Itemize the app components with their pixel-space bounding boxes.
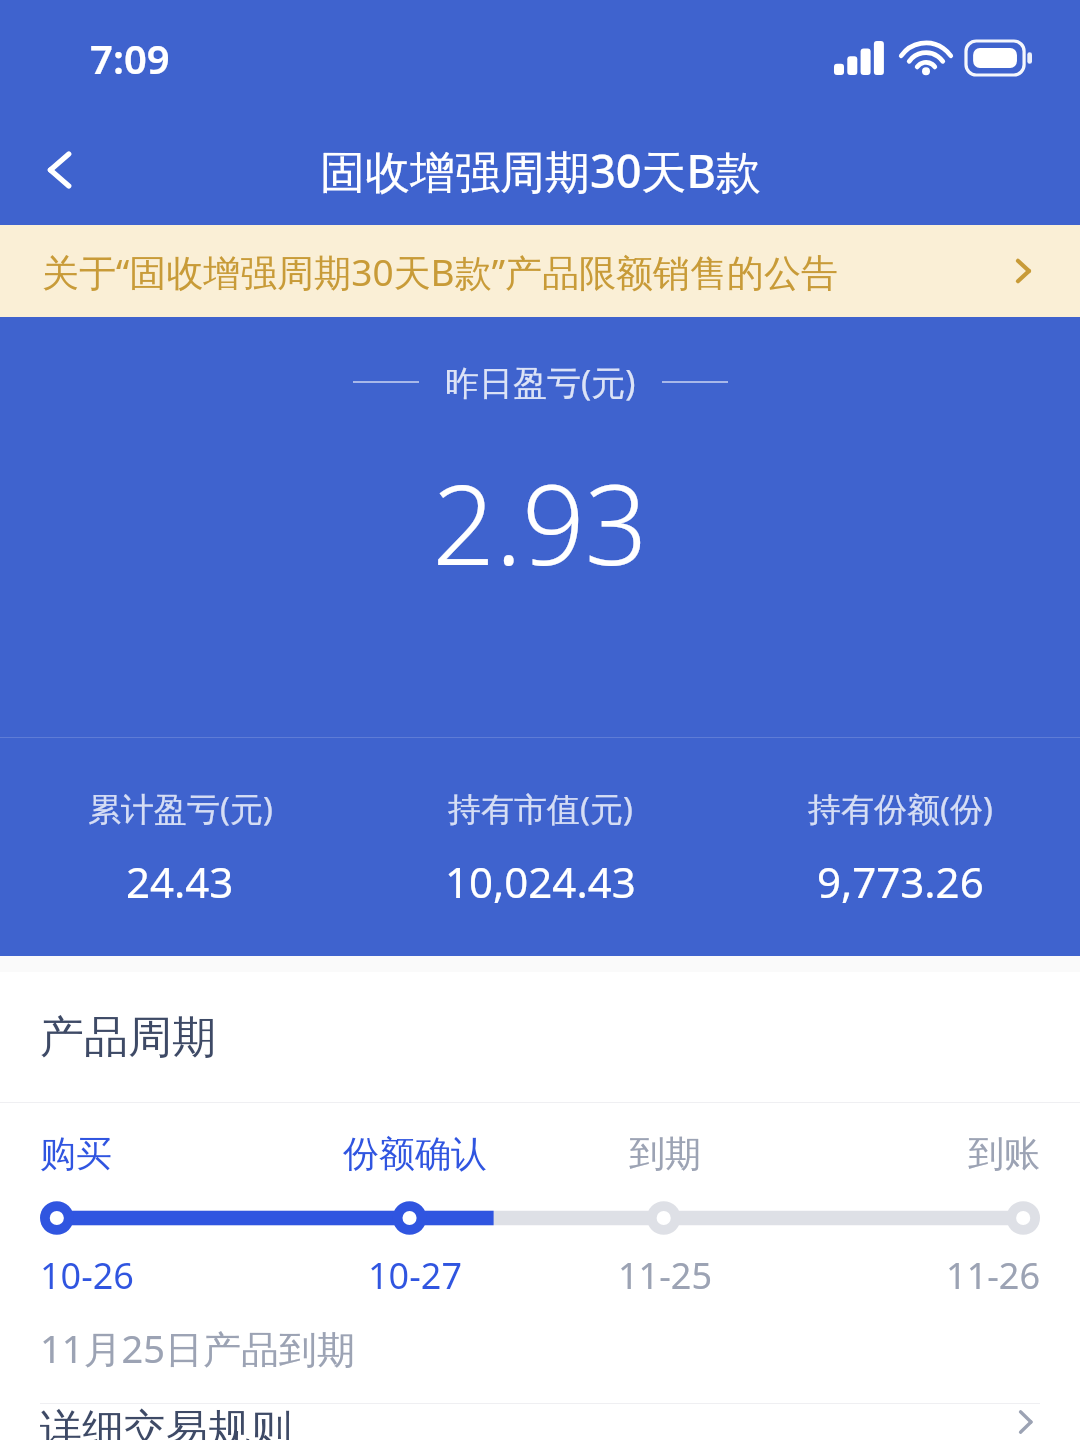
staticText: 24.43 xyxy=(126,853,234,910)
staticText: 持有份额(份) xyxy=(808,786,993,831)
staticText: 昨日盈亏(元) xyxy=(445,359,636,405)
staticText: 到账 xyxy=(790,1131,1040,1176)
staticText: 累计盈亏(元) xyxy=(88,786,273,831)
staticText: 产品周期 xyxy=(40,1010,216,1065)
button[interactable]: 详细交易规则 xyxy=(0,1404,1080,1440)
staticText: 11月25日产品到期 xyxy=(40,1322,355,1374)
staticText: 份额确认 xyxy=(290,1131,540,1176)
staticText: 到期 xyxy=(540,1131,790,1176)
staticText: 固收增强周期30天B款 xyxy=(320,140,761,201)
staticText: 10-26 xyxy=(40,1251,290,1293)
staticText: 持有市值(元) xyxy=(448,786,633,831)
staticText: 9,773.26 xyxy=(817,853,984,910)
button[interactable]: 关于“固收增强周期30天B款”产品限额销售的公告 xyxy=(0,225,1080,317)
staticText: 10-27 xyxy=(290,1251,540,1293)
staticText: 购买 xyxy=(40,1131,290,1176)
staticText: 关于“固收增强周期30天B款”产品限额销售的公告 xyxy=(42,246,1008,297)
staticText: 11-26 xyxy=(790,1251,1040,1293)
button[interactable]: Back xyxy=(14,124,106,216)
staticText: 10,024.43 xyxy=(445,853,636,910)
staticText: 7:09 xyxy=(90,31,170,85)
staticText: 详细交易规则 xyxy=(40,1404,1010,1440)
staticText: 11-25 xyxy=(540,1251,790,1293)
staticText: 2.93 xyxy=(0,447,1080,597)
